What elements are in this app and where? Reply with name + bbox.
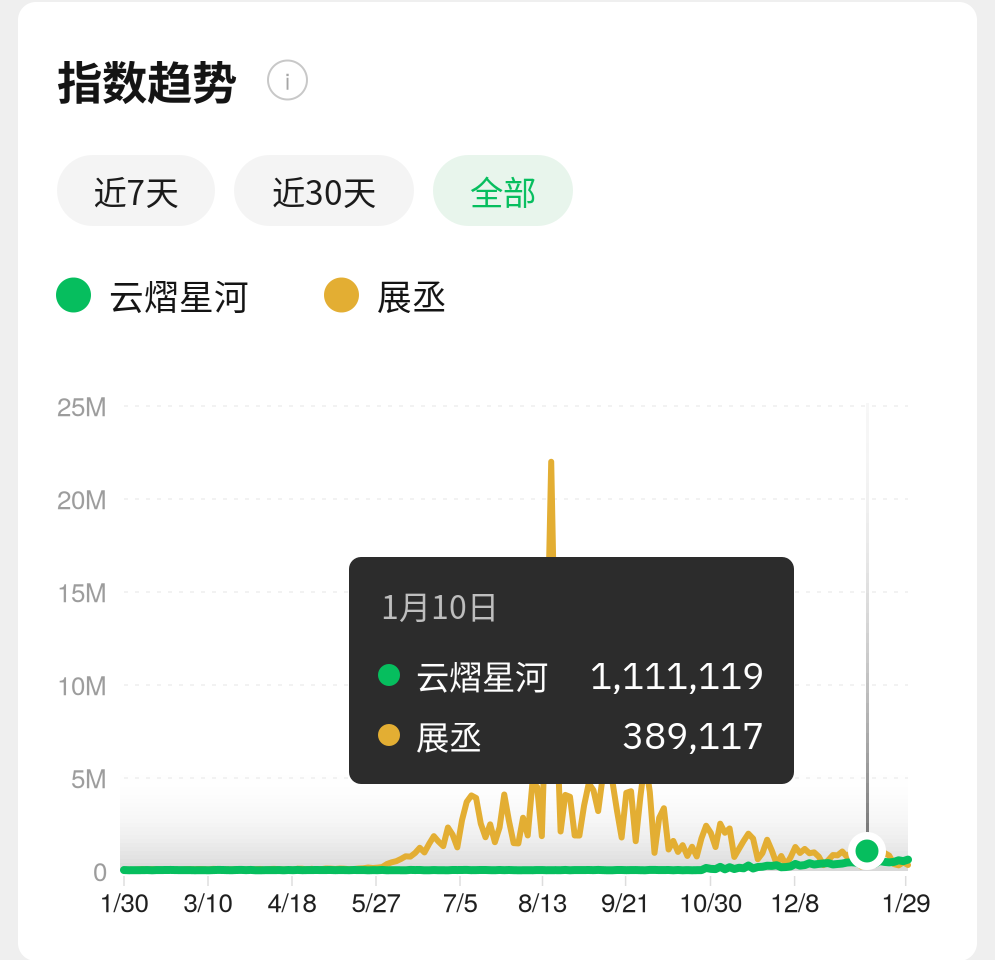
staticText: 389,117 xyxy=(622,711,764,759)
staticText: 指数趋势 xyxy=(57,47,237,113)
staticText: 展丞 xyxy=(377,270,447,320)
staticText: 展丞 xyxy=(416,711,482,759)
staticText: 1/30 xyxy=(99,882,148,920)
staticText: 5M xyxy=(71,758,107,796)
staticText: 7/5 xyxy=(442,882,477,920)
button[interactable]: 近30天 xyxy=(234,155,414,226)
staticText: 12/8 xyxy=(770,882,819,920)
staticText: 1,111,119 xyxy=(590,651,764,699)
staticText: 1月10日 xyxy=(381,582,499,628)
button[interactable]: 全部 xyxy=(433,155,573,226)
button[interactable]: 近7天 xyxy=(57,155,215,226)
staticText: 10M xyxy=(57,665,107,703)
staticText: 5/27 xyxy=(351,882,400,920)
staticText: 全部 xyxy=(470,166,536,215)
staticText: 1/29 xyxy=(881,882,930,920)
staticText: 云熠星河 xyxy=(416,651,548,699)
staticText: 0 xyxy=(93,851,107,889)
staticText: 25M xyxy=(57,386,107,424)
staticText: 4/18 xyxy=(267,882,316,920)
staticText: 9/21 xyxy=(601,882,650,920)
staticText: 10/30 xyxy=(679,882,742,920)
button[interactable]: Info xyxy=(268,60,307,99)
staticText: 3/10 xyxy=(183,882,232,920)
staticText: 近7天 xyxy=(93,166,178,215)
staticText: 近30天 xyxy=(272,166,376,215)
staticText: 20M xyxy=(57,479,107,517)
staticText: i xyxy=(285,64,290,96)
staticText: 云熠星河 xyxy=(109,270,249,320)
staticText: 8/13 xyxy=(518,882,567,920)
staticText: 15M xyxy=(57,572,107,610)
